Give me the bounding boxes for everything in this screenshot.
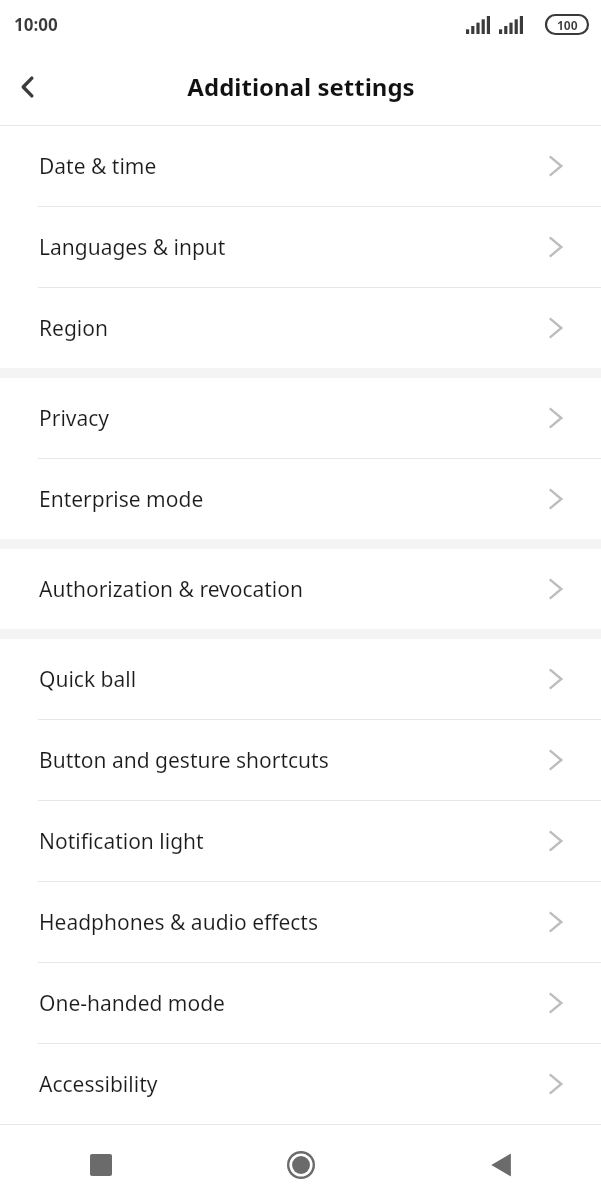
button[interactable]: Back xyxy=(473,1137,529,1193)
button[interactable]: Authorization & revocation xyxy=(0,549,601,629)
button[interactable]: Headphones & audio effects xyxy=(0,882,601,962)
staticText: Headphones & audio effects xyxy=(39,908,549,937)
staticText: Accessibility xyxy=(39,1070,549,1099)
button[interactable]: Languages & input xyxy=(0,207,601,287)
button[interactable]: Region xyxy=(0,288,601,368)
staticText: Enterprise mode xyxy=(39,485,549,514)
button[interactable]: Enterprise mode xyxy=(0,459,601,539)
staticText: Additional settings xyxy=(187,70,415,103)
button[interactable]: Home xyxy=(273,1137,329,1193)
staticText: Quick ball xyxy=(39,665,549,694)
button[interactable]: Privacy xyxy=(0,378,601,458)
button[interactable]: Back xyxy=(0,59,56,115)
staticText: Authorization & revocation xyxy=(39,575,549,604)
staticText: One-handed mode xyxy=(39,989,549,1018)
button[interactable]: Notification light xyxy=(0,801,601,881)
button[interactable]: Date & time xyxy=(0,126,601,206)
staticText: Date & time xyxy=(39,152,549,181)
button[interactable]: Quick ball xyxy=(0,639,601,719)
button[interactable]: Accessibility xyxy=(0,1044,601,1124)
staticText: Languages & input xyxy=(39,233,549,262)
staticText: 10:00 xyxy=(14,13,58,36)
staticText: Privacy xyxy=(39,404,549,433)
button[interactable]: One-handed mode xyxy=(0,963,601,1043)
staticText: Notification light xyxy=(39,827,549,856)
staticText: 100 xyxy=(557,17,578,33)
button[interactable]: Button and gesture shortcuts xyxy=(0,720,601,800)
staticText: Region xyxy=(39,314,549,343)
staticText: Button and gesture shortcuts xyxy=(39,746,549,775)
button[interactable]: Recent apps xyxy=(73,1137,129,1193)
